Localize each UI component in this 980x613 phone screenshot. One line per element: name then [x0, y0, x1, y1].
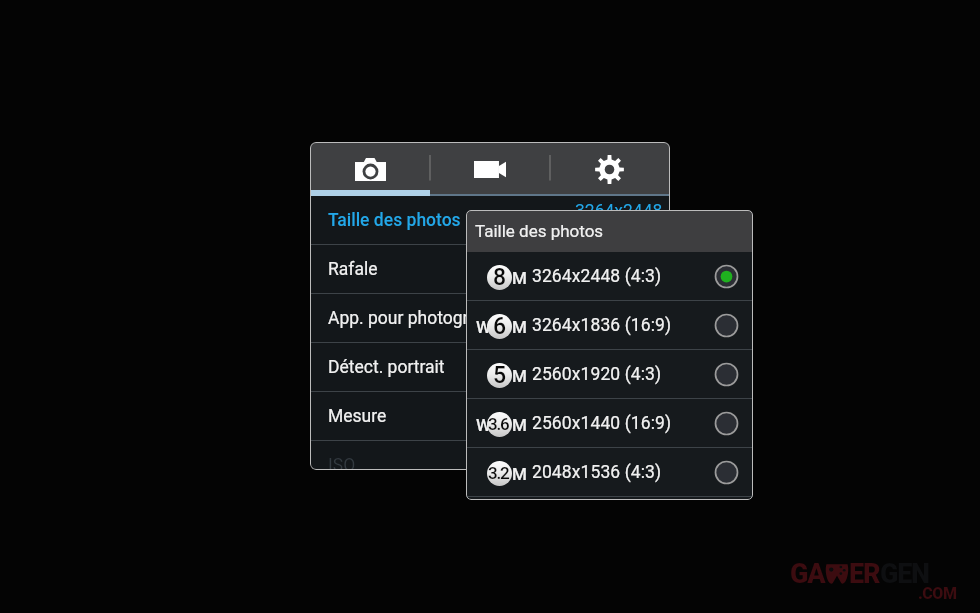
staticText: M [512, 366, 527, 386]
button[interactable]: App. pour photogr [310, 294, 670, 343]
staticText: W [476, 415, 491, 435]
staticText: Mesure [328, 406, 387, 427]
staticText: M [512, 317, 527, 337]
staticText: 2048x1536 (4:3) [532, 462, 662, 483]
staticText: M [512, 464, 527, 484]
button[interactable]: Taille des photos [310, 196, 670, 245]
button[interactable]: W [466, 399, 753, 448]
button[interactable]: Rafale [310, 245, 670, 294]
staticText: 2560x1920 (4:3) [532, 364, 662, 385]
button[interactable]: M [466, 448, 753, 497]
staticText: 3264x2448 (4:3) [532, 266, 662, 287]
button[interactable]: Photo mode [310, 142, 430, 190]
staticText: 2560x1440 (16:9) [532, 413, 672, 434]
button[interactable]: W [466, 301, 753, 350]
staticText: App. pour photogr [328, 308, 469, 329]
staticText: M [512, 268, 527, 288]
button[interactable]: M [466, 350, 753, 399]
staticText: Taille des photos [328, 210, 461, 231]
staticText: W [476, 317, 491, 337]
staticText: GA [790, 558, 825, 590]
staticText: .COM [918, 584, 957, 603]
staticText: 3264x2448 [575, 201, 663, 222]
button[interactable]: Détect. portrait [310, 343, 670, 392]
staticText: ISO [328, 455, 356, 470]
staticText: 6 [493, 313, 507, 339]
staticText: 3.2 [488, 463, 509, 483]
staticText: M [512, 415, 527, 435]
button[interactable]: M [466, 252, 753, 301]
button[interactable]: Video mode [430, 142, 550, 190]
button[interactable]: Mesure [310, 392, 670, 441]
staticText: ER [849, 558, 880, 590]
staticText: GEN [880, 558, 929, 590]
staticText: 5 [493, 362, 507, 388]
staticText: Taille des photos [475, 221, 604, 241]
button[interactable]: General settings [550, 142, 670, 190]
staticText: 3264x1836 (16:9) [532, 315, 672, 336]
staticText: Détect. portrait [328, 357, 445, 378]
button[interactable]: ISO [310, 441, 670, 470]
staticText: 3.6 [488, 414, 509, 434]
staticText: Rafale [328, 259, 378, 280]
staticText: 8 [493, 264, 507, 290]
